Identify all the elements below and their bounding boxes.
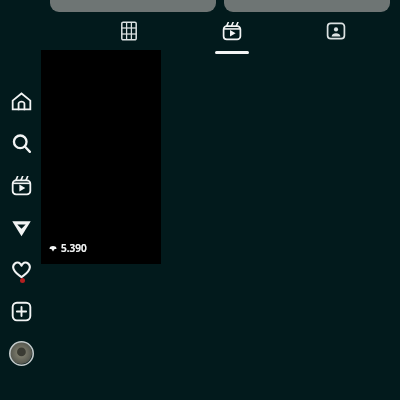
button[interactable]: Reels <box>193 12 271 58</box>
staticText: 5.390 <box>61 241 87 255</box>
button[interactable]: Reel, 5.390 views <box>41 50 161 264</box>
button[interactable]: Tagged <box>297 12 375 58</box>
button[interactable]: Follow <box>50 0 216 12</box>
button[interactable]: Reels <box>0 164 42 206</box>
button[interactable]: Search <box>0 122 42 164</box>
button[interactable]: Profile <box>0 332 42 374</box>
button[interactable]: Message <box>224 0 390 12</box>
button[interactable]: Create <box>0 290 42 332</box>
button[interactable]: Posts <box>90 12 168 58</box>
button[interactable]: Home <box>0 80 42 122</box>
button[interactable]: Notifications <box>0 248 42 290</box>
button[interactable]: Messages <box>0 206 42 248</box>
